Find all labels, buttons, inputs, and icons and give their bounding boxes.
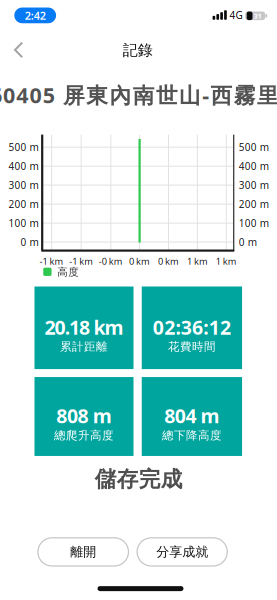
staticText: 高度 [57,265,79,279]
staticText: 500 m [239,140,269,154]
staticText: 0 m [20,235,38,249]
staticText: 400 m [8,159,38,173]
staticText: 300 m [239,178,269,192]
staticText: 60405 屏東內南世山-西霧里程 [0,80,277,110]
staticText: 808 m [56,402,112,429]
button[interactable]: 離開 [38,538,128,566]
staticText: 200 m [239,197,269,211]
staticText: 1 km [216,255,237,267]
staticText: 0 km [158,255,179,267]
staticText: 100 m [8,216,38,230]
staticText: 0 m [239,235,257,249]
staticText: 離開 [70,544,96,560]
staticText: 20.18 km [44,314,123,340]
staticText: 500 m [8,140,38,154]
staticText: 總下降高度 [162,428,222,443]
staticText: 花費時間 [168,339,216,354]
staticText: 記錄 [123,41,153,60]
staticText: 804 m [164,402,219,429]
staticText: 2:42 [25,8,46,23]
staticText: 31 [253,11,261,21]
staticText: 總爬升高度 [54,428,114,443]
staticText: 1 km [187,255,208,267]
staticText: 300 m [8,178,38,192]
button[interactable]: 分享成就 [137,538,227,566]
staticText: 02:36:12 [153,314,231,340]
staticText: 分享成就 [156,544,208,560]
staticText: 4G [229,8,242,22]
staticText: 200 m [8,197,38,211]
staticText: -0 km [99,255,123,267]
staticText: 0 km [129,255,150,267]
staticText: -1 km [69,255,93,267]
staticText: -1 km [40,255,64,267]
staticText: 100 m [239,216,269,230]
button[interactable]: 2:42 [14,8,56,23]
staticText: 400 m [239,159,269,173]
button[interactable]: Back [13,41,24,58]
staticText: 儲存完成 [95,466,183,493]
staticText: 累計距離 [60,339,108,354]
